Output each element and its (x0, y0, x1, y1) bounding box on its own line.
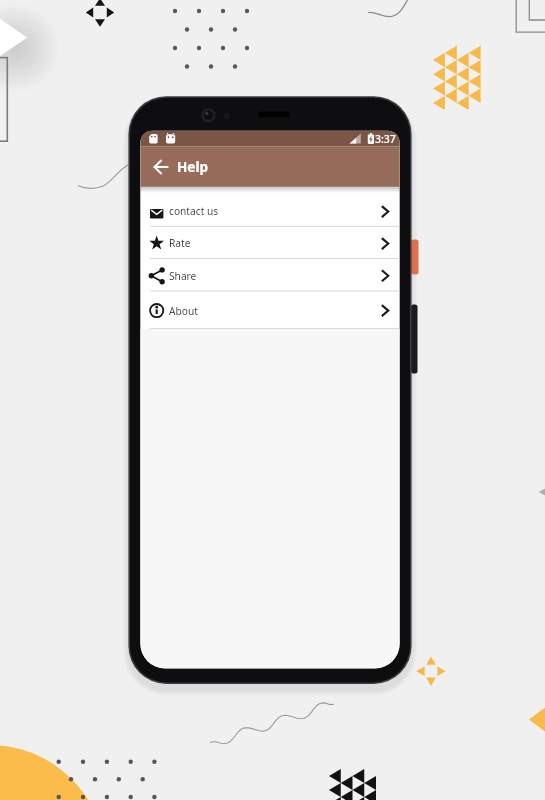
staticText: contact us (169, 204, 219, 218)
button[interactable] (146, 152, 176, 182)
staticText: Share (169, 269, 197, 283)
button[interactable]: contact us (140, 195, 399, 227)
button[interactable]: About (140, 292, 399, 329)
button[interactable]: Rate (140, 227, 399, 259)
staticText: 3:37 (375, 132, 396, 146)
staticText: About (169, 304, 198, 318)
staticText: Rate (169, 236, 191, 250)
button[interactable]: Share (140, 260, 399, 292)
staticText: Help (177, 158, 208, 176)
